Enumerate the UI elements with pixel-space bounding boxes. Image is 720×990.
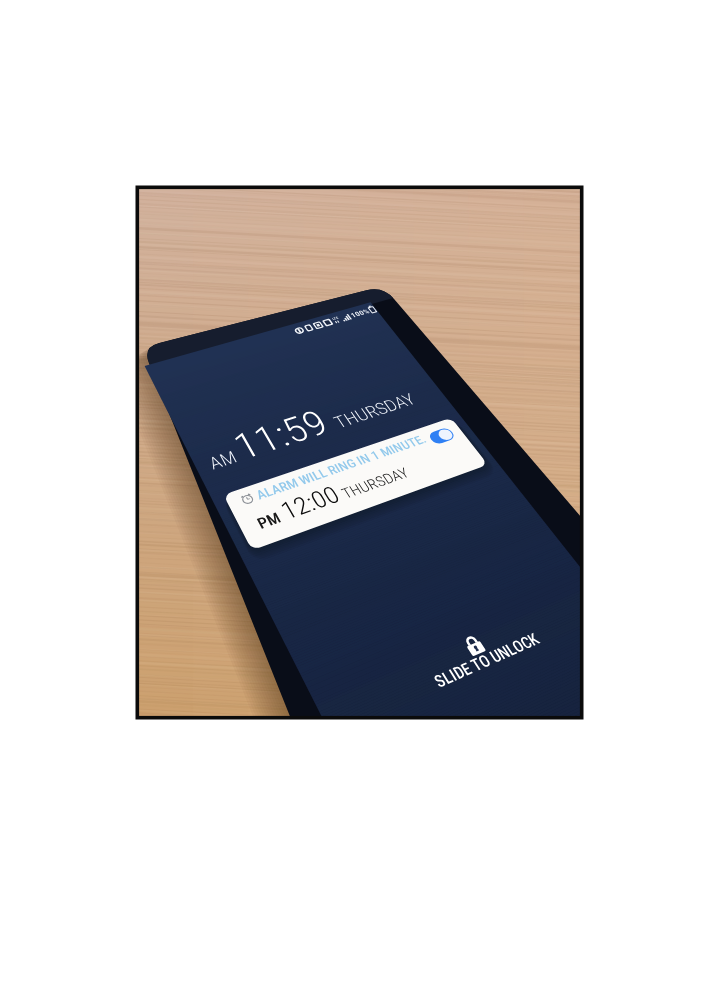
button[interactable]: Phone lock screen showing alarm, on a wo… bbox=[0, 0, 720, 990]
